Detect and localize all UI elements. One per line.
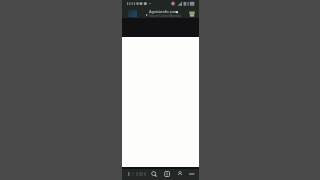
button[interactable]: Home: [175, 167, 185, 180]
button[interactable]: Tabs: [162, 167, 172, 180]
button[interactable]: Back: [124, 167, 134, 180]
button[interactable]: App menu: [189, 11, 195, 17]
button[interactable]: History: [140, 167, 150, 180]
staticText: Forum/Cotton/Natural: [149, 14, 181, 18]
button[interactable]: Secure: [174, 9, 179, 14]
button[interactable]: Forward: [128, 167, 138, 180]
button[interactable]: More options: [187, 167, 197, 180]
staticText: Agvisionfo.com: [149, 9, 178, 14]
button[interactable]: Downloads: [136, 167, 146, 180]
button[interactable]: Bookmark: [132, 167, 142, 180]
button[interactable]: Search: [149, 167, 159, 180]
button[interactable]: Page preview: [128, 10, 137, 17]
